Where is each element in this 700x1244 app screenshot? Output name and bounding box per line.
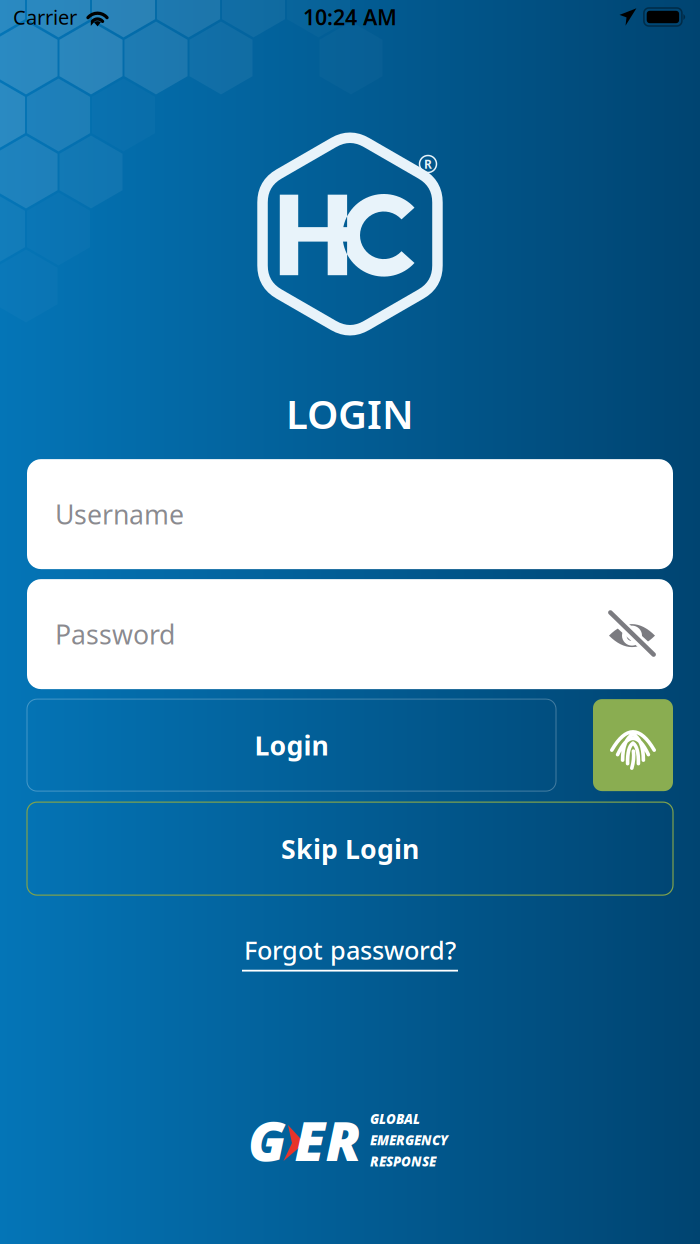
staticText: G [248, 1104, 286, 1176]
staticText: Carrier [13, 4, 77, 30]
staticText: R [424, 156, 432, 172]
button[interactable]: Forgot password? [242, 933, 458, 971]
staticText: Username [55, 496, 184, 532]
button[interactable]: Show password [594, 593, 670, 675]
button[interactable]: Log in with fingerprint [593, 699, 673, 791]
staticText: LOGIN [286, 387, 414, 440]
staticText: ER [294, 1104, 361, 1176]
staticText: Login [254, 727, 328, 763]
staticText: Forgot password? [244, 933, 456, 967]
staticText: 10:24 AM [303, 3, 397, 31]
staticText: GLOBAL [370, 1110, 420, 1128]
staticText: Skip Login [281, 831, 419, 866]
button[interactable]: Login [27, 699, 556, 791]
staticText: EMERGENCY [370, 1131, 448, 1149]
staticText: Password [55, 616, 175, 652]
button[interactable]: Skip Login [27, 802, 673, 895]
staticText: RESPONSE [370, 1152, 436, 1170]
